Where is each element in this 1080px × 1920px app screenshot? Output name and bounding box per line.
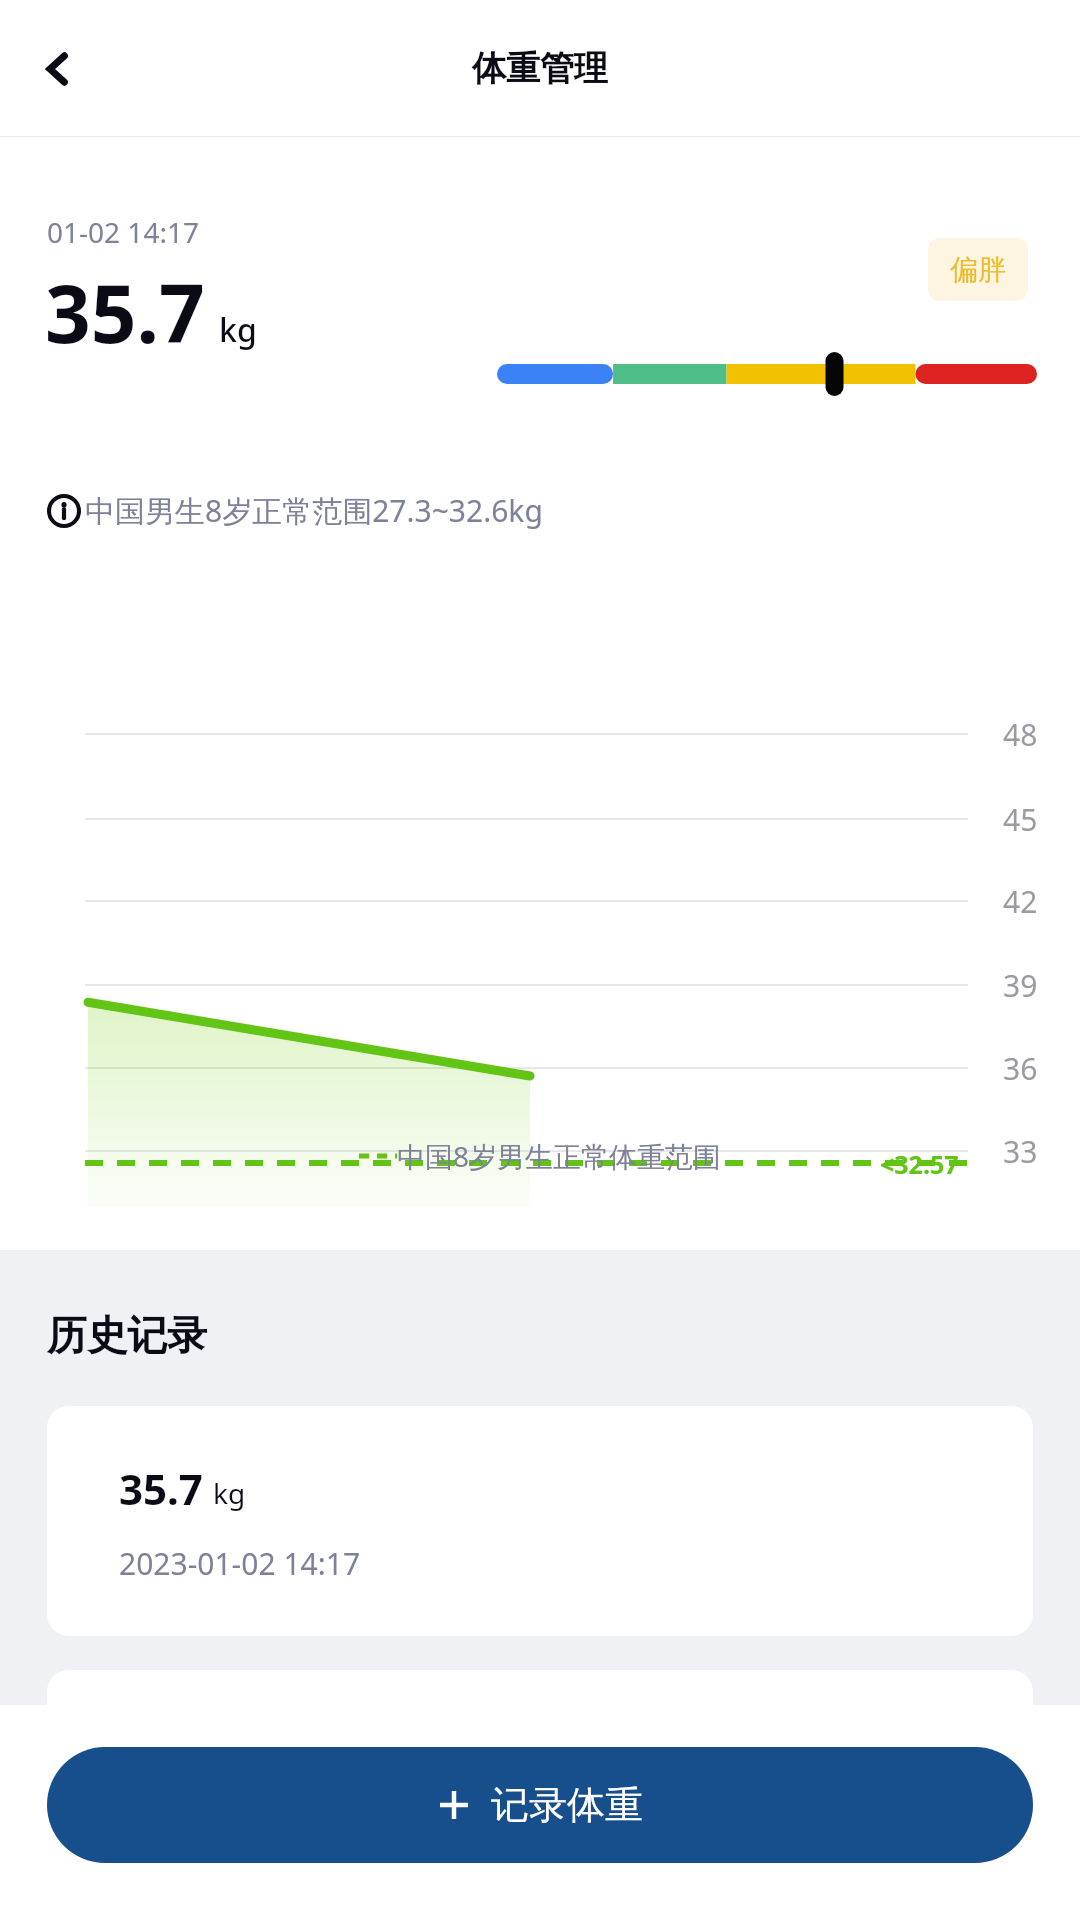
staticText: 01-02 14:17: [47, 213, 199, 251]
button[interactable]: Back: [20, 31, 96, 107]
staticText: 45: [1003, 799, 1038, 840]
button[interactable]: 35.7: [47, 1670, 1033, 1900]
staticText: 35.7: [45, 257, 205, 366]
staticText: 偏胖: [950, 252, 1006, 287]
staticText: 35.7: [119, 1724, 203, 1781]
staticText: 中国男生8岁正常范围27.3~32.6kg: [85, 490, 543, 531]
staticText: kg: [213, 1738, 246, 1776]
button[interactable]: 记录体重: [47, 1747, 1033, 1863]
staticText: 体重管理: [472, 47, 608, 90]
staticText: 36: [1003, 1048, 1038, 1089]
staticText: 33: [1003, 1131, 1038, 1172]
staticText: <32.57: [880, 1147, 959, 1181]
button[interactable]: 偏胖: [928, 238, 1028, 301]
staticText: 中国8岁男生正常体重范围: [397, 1137, 722, 1175]
staticText: 35.7: [119, 1460, 203, 1517]
staticText: 2023-01-02 14:17: [119, 1543, 361, 1584]
staticText: kg: [213, 1474, 246, 1512]
staticText: kg: [219, 308, 257, 352]
staticText: 42: [1003, 881, 1038, 922]
button[interactable]: 35.7: [47, 1406, 1033, 1636]
staticText: 39: [1003, 965, 1038, 1006]
staticText: 历史记录: [47, 1310, 207, 1360]
staticText: 48: [1003, 714, 1038, 755]
staticText: 记录体重: [491, 1781, 643, 1829]
